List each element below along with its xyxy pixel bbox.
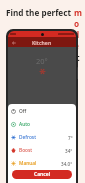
staticText: Auto [19, 121, 30, 128]
staticText: mode [74, 7, 81, 51]
staticText: for every moment [6, 52, 80, 63]
button[interactable]: Off [8, 105, 76, 118]
staticText: 20° [36, 56, 48, 66]
button[interactable]: Defrost [8, 131, 76, 144]
button[interactable]: Manual [8, 157, 76, 170]
staticText: Boost [19, 147, 33, 154]
staticText: Manual [19, 160, 37, 167]
staticText: 34.0° [61, 161, 73, 167]
staticText: 34° [65, 148, 73, 154]
staticText: Kitchen [32, 39, 52, 46]
staticText: Defrost [19, 134, 37, 141]
button[interactable]: Cancel [12, 170, 72, 179]
staticText: Find the perfect [6, 7, 74, 18]
staticText: Off [19, 108, 27, 115]
button[interactable]: Auto [8, 118, 76, 131]
staticText: Cancel [34, 171, 51, 178]
button[interactable]: Back [10, 39, 17, 46]
button[interactable]: Boost [8, 144, 76, 157]
staticText: 7° [68, 135, 73, 141]
